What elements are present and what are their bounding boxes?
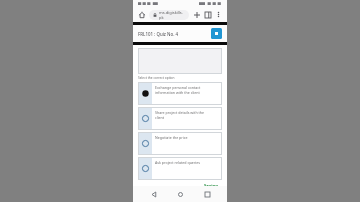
button[interactable]: Tabs	[203, 10, 212, 19]
button[interactable]: Ask project related queries	[138, 157, 222, 180]
staticText: Share project details with the client	[155, 110, 205, 120]
staticText: Negotiate the price	[155, 135, 188, 140]
button[interactable]: Home	[137, 10, 147, 20]
staticText: Saving...	[204, 183, 222, 186]
button[interactable]: Home	[174, 188, 186, 200]
staticText: Select the correct option	[138, 76, 175, 80]
button[interactable]: Quiz info	[211, 28, 222, 39]
button[interactable]: Exchange personal contact information wi…	[138, 82, 222, 105]
button[interactable]: Recent apps	[201, 188, 213, 200]
staticText: FRL101 : Quiz No. 4	[138, 31, 211, 37]
staticText: Exchange personal contact information wi…	[155, 85, 201, 95]
button[interactable]: Negotiate the price	[138, 132, 222, 155]
button[interactable]	[138, 48, 222, 74]
button[interactable]: Back	[148, 188, 160, 200]
button[interactable]: Share project details with the client	[138, 107, 222, 130]
button[interactable]: More options	[214, 10, 223, 19]
button[interactable]: New tab	[192, 10, 201, 19]
button[interactable]: ms.digiskills.pk	[149, 10, 189, 20]
staticText: ms.digiskills.pk	[159, 10, 185, 20]
staticText: Ask project related queries	[155, 160, 201, 165]
